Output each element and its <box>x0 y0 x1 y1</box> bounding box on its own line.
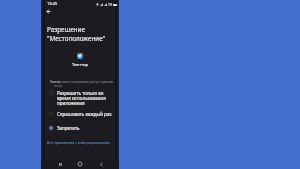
button[interactable]: Все приложения с этим разрешением <box>46 139 111 146</box>
staticText: всегда <box>54 84 63 88</box>
button[interactable]: Back <box>43 6 53 16</box>
staticText: Все приложения с этим разрешением <box>47 140 110 145</box>
button[interactable]: Разрешить только во время использования … <box>41 90 119 107</box>
staticText: Спрашивать каждый раз <box>57 111 112 117</box>
staticText: 79 <box>108 2 112 7</box>
button[interactable]: Спрашивать каждый раз <box>41 111 119 117</box>
staticText: Разрешить только во время использования … <box>57 90 106 107</box>
button[interactable]: Home <box>75 159 85 169</box>
button[interactable]: Recent apps <box>55 159 65 169</box>
staticText: Твиттер <box>41 62 119 68</box>
staticText: Разрешение <box>47 25 85 34</box>
staticText: Твиттер <box>50 80 61 84</box>
staticText: 13:45 <box>47 1 58 6</box>
staticText: "Местоположение" <box>47 34 106 43</box>
button[interactable]: Запретить <box>41 125 119 131</box>
button[interactable]: Back <box>96 159 106 169</box>
staticText: может запрашивать доступ к данным <box>61 80 113 84</box>
staticText: Запретить <box>57 125 80 131</box>
